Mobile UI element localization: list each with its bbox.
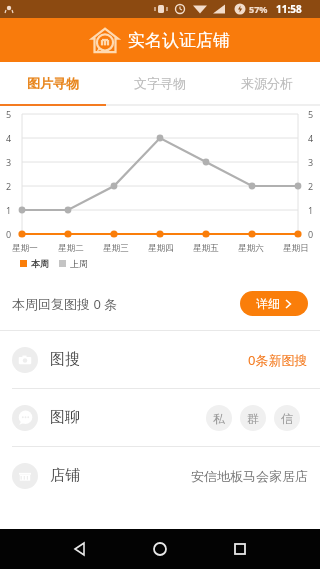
staticText: 2	[6, 180, 12, 192]
button[interactable]: Recents	[213, 529, 320, 569]
button[interactable]: 私	[206, 405, 232, 431]
staticText: 0	[6, 228, 12, 240]
button[interactable]: 群	[240, 405, 266, 431]
staticText: 实名认证店铺	[128, 30, 230, 51]
staticText: 星期五	[193, 243, 219, 254]
staticText: 星期六	[238, 243, 264, 254]
staticText: 星期四	[148, 243, 174, 254]
staticText: 安信地板马会家居店	[191, 468, 308, 484]
staticText: 星期二	[58, 243, 84, 254]
button[interactable]: 来源分析	[213, 62, 320, 104]
staticText: 星期日	[283, 243, 309, 254]
other: Shop	[12, 463, 38, 489]
button[interactable]: 文字寻物	[106, 62, 213, 104]
other: Logo	[90, 25, 120, 55]
button[interactable]: 信	[274, 405, 300, 431]
other: Image search	[12, 347, 38, 373]
staticText: 信	[281, 411, 293, 426]
button[interactable]: 图片寻物	[0, 62, 106, 104]
button[interactable]: 详细	[240, 291, 308, 316]
staticText: 11:58	[276, 2, 302, 16]
staticText: 57%	[249, 3, 268, 15]
staticText: 店铺	[50, 466, 80, 485]
staticText: 5	[6, 108, 12, 120]
staticText: 2	[308, 180, 314, 192]
staticText: 图片寻物	[27, 75, 79, 91]
button[interactable]: Shop	[0, 447, 320, 504]
staticText: 本周	[31, 258, 49, 269]
button[interactable]: Home	[106, 529, 213, 569]
staticText: 1	[6, 204, 12, 216]
staticText: 图聊	[50, 408, 80, 427]
button[interactable]: Image search	[0, 331, 320, 388]
staticText: 0条新图搜	[248, 351, 308, 369]
staticText: 3	[6, 156, 12, 168]
staticText: 详细	[256, 296, 280, 311]
staticText: 1	[308, 204, 314, 216]
staticText: 0	[308, 228, 314, 240]
staticText: 私	[213, 411, 225, 426]
staticText: 本周回复图搜 0 条	[12, 295, 118, 313]
staticText: 图搜	[50, 350, 80, 369]
staticText: 4	[308, 132, 314, 144]
staticText: 星期一	[12, 243, 38, 254]
staticText: 3	[308, 156, 314, 168]
button[interactable]: Back	[0, 529, 106, 569]
button[interactable]: Chat	[0, 389, 320, 446]
staticText: 4	[6, 132, 12, 144]
staticText: 群	[247, 411, 259, 426]
other: Chat	[12, 405, 38, 431]
staticText: 星期三	[103, 243, 129, 254]
staticText: 文字寻物	[134, 75, 186, 91]
staticText: 来源分析	[241, 75, 293, 91]
staticText: 上周	[70, 258, 88, 269]
staticText: 5	[308, 108, 314, 120]
